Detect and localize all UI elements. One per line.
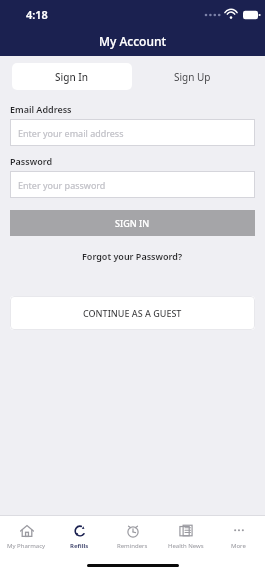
staticText: CONTINUE AS A GUEST bbox=[83, 307, 182, 319]
staticText: Reminders bbox=[117, 542, 148, 550]
staticText: Enter your email address bbox=[18, 127, 124, 139]
staticText: More bbox=[231, 542, 246, 550]
staticText: Health News bbox=[168, 542, 204, 550]
staticText: Password bbox=[10, 155, 53, 167]
other: My Pharmacy bbox=[19, 523, 35, 539]
button[interactable]: Sign In bbox=[12, 63, 132, 90]
button[interactable]: Sign Up bbox=[132, 63, 253, 90]
staticText: Forgot your Password? bbox=[82, 250, 183, 262]
button[interactable]: Forgot your Password? bbox=[0, 248, 265, 264]
other: Refills bbox=[72, 523, 88, 539]
other: More bbox=[231, 523, 247, 539]
staticText: My Account bbox=[99, 33, 167, 49]
staticText: My Pharmacy bbox=[7, 542, 46, 550]
button[interactable]: More bbox=[212, 516, 265, 556]
button[interactable]: Refills bbox=[53, 516, 106, 556]
other: Health News bbox=[178, 523, 194, 539]
staticText: Email Address bbox=[10, 103, 72, 115]
button[interactable]: SIGN IN bbox=[10, 210, 255, 236]
staticText: 4:18 bbox=[26, 7, 48, 22]
staticText: SIGN IN bbox=[115, 217, 150, 229]
staticText: Enter your password bbox=[18, 179, 106, 191]
button[interactable]: My Pharmacy bbox=[0, 516, 53, 556]
button[interactable]: Enter your password bbox=[10, 171, 255, 198]
staticText: Sign In bbox=[55, 70, 89, 84]
button[interactable]: Enter your email address bbox=[10, 119, 255, 146]
staticText: Sign Up bbox=[174, 70, 211, 84]
button[interactable]: Health News bbox=[159, 516, 212, 556]
staticText: Refills bbox=[70, 542, 89, 550]
other: Reminders bbox=[125, 523, 141, 539]
button[interactable]: Reminders bbox=[106, 516, 159, 556]
button[interactable]: CONTINUE AS A GUEST bbox=[10, 296, 255, 330]
